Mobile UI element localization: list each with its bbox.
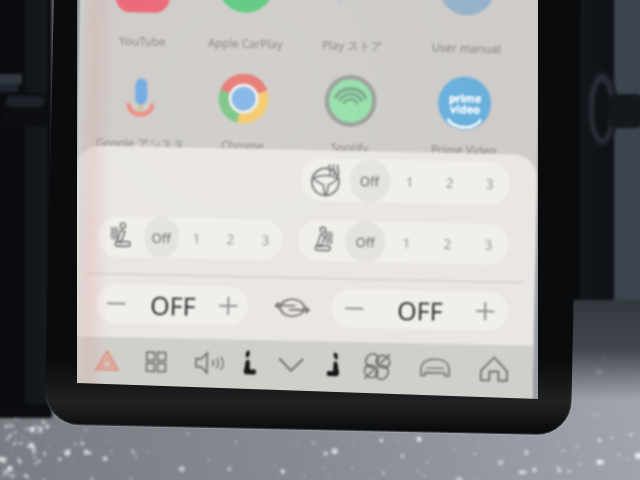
staticText: 3 (484, 236, 493, 254)
button[interactable]: Increase temperature (208, 286, 249, 326)
button[interactable]: Off (349, 159, 390, 203)
staticText: Google アシスタ (95, 135, 185, 152)
staticText: YouTube (119, 33, 166, 50)
button[interactable]: 1 (179, 217, 214, 259)
button[interactable]: Driver seat heater (97, 216, 145, 258)
staticText: Play ストア (322, 37, 383, 55)
button[interactable]: Passenger seat heater (297, 220, 345, 262)
staticText: 2 (446, 174, 454, 192)
staticText: 1 (192, 230, 201, 248)
button[interactable]: 3 (469, 161, 510, 205)
button[interactable]: 1 (385, 222, 427, 263)
button[interactable]: Fan (355, 344, 399, 389)
button[interactable]: OFF (377, 289, 463, 330)
button[interactable]: Play ストア (290, 36, 414, 56)
staticText: 1 (406, 173, 414, 191)
staticText: 3 (486, 175, 494, 193)
staticText: Spotify (330, 139, 369, 156)
button[interactable]: Off (144, 217, 179, 258)
staticText: Off (355, 233, 376, 251)
button[interactable]: 2 (213, 218, 248, 260)
button[interactable]: Off (344, 221, 386, 263)
staticText: Off (360, 172, 380, 190)
staticText: Chrome (220, 137, 265, 154)
button[interactable]: Steering wheel heater (300, 158, 350, 202)
button[interactable]: prime video (438, 86, 491, 121)
button[interactable]: 2 (429, 161, 470, 204)
button[interactable]: OFF (136, 284, 210, 325)
button[interactable]: Hazard lights (85, 338, 130, 383)
button[interactable]: Chrome (180, 135, 305, 156)
button[interactable]: 3 (467, 223, 509, 265)
button[interactable]: Google アシスタ (77, 133, 202, 154)
staticText: User manual (432, 40, 501, 57)
staticText: Prime Video (430, 142, 497, 159)
button[interactable]: Spotify (287, 138, 412, 158)
button[interactable]: Sync temperature (270, 289, 315, 326)
button[interactable]: YouTube (80, 31, 204, 52)
staticText: prime video (448, 90, 482, 118)
staticText: Apple CarPlay (208, 35, 283, 52)
button[interactable]: Volume (184, 340, 228, 385)
button[interactable]: User manual (404, 38, 528, 59)
button[interactable]: Decrease temperature (96, 284, 137, 323)
button[interactable]: 1 (389, 160, 430, 203)
staticText: 2 (226, 230, 235, 248)
button[interactable]: 2 (426, 222, 468, 264)
staticText: OFF (397, 293, 444, 328)
staticText: 3 (261, 231, 270, 249)
button[interactable]: 3 (248, 219, 283, 260)
button[interactable]: Home (472, 346, 516, 391)
button[interactable]: Apps (134, 339, 178, 384)
staticText: 1 (402, 234, 411, 252)
button[interactable]: Decrease temperature (331, 288, 378, 328)
button[interactable]: Prime Video (401, 140, 526, 161)
button[interactable]: Increase temperature (462, 291, 509, 331)
button[interactable]: Passenger seat (313, 343, 357, 388)
staticText: 2 (443, 235, 452, 253)
staticText: OFF (150, 288, 197, 323)
staticText: Off (151, 229, 172, 247)
button[interactable]: Collapse panel (269, 342, 313, 387)
button[interactable]: Apple CarPlay (183, 33, 307, 54)
button[interactable]: Defrost (413, 345, 457, 390)
button[interactable]: Driver seat (226, 341, 270, 386)
